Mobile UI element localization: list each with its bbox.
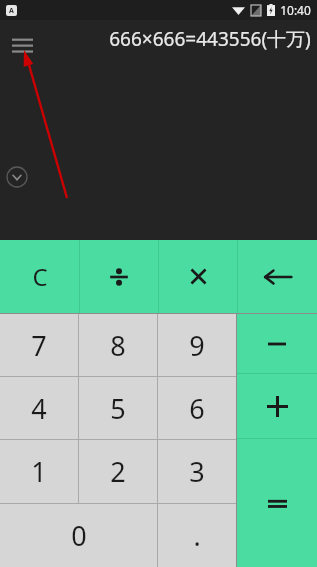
button[interactable]: 9 (158, 314, 236, 376)
button[interactable]: Backspace (238, 240, 317, 313)
button[interactable]: Menu (6, 29, 38, 61)
button[interactable]: 3 (158, 440, 236, 503)
button[interactable]: C (0, 240, 79, 313)
button[interactable]: Plus (237, 374, 317, 438)
button[interactable]: 2 (79, 440, 157, 503)
button[interactable]: Multiply (159, 240, 237, 313)
button[interactable]: Expand history (6, 166, 28, 188)
staticText: 1 (31, 453, 47, 490)
staticText: C (32, 260, 48, 293)
staticText: 666×666=443556(十万) (109, 26, 311, 52)
staticText: A (9, 6, 14, 16)
staticText: 2 (110, 453, 126, 490)
button[interactable]: 0 (0, 504, 157, 567)
button[interactable]: Divide (80, 240, 158, 313)
staticText: 3 (189, 453, 205, 490)
button[interactable]: Minus (237, 314, 317, 373)
staticText: 8 (110, 327, 126, 364)
button[interactable]: 6 (158, 377, 236, 439)
staticText: 10:40 (280, 2, 311, 18)
staticText: 5 (110, 390, 126, 427)
button[interactable]: 1 (0, 440, 78, 503)
staticText: . (193, 517, 201, 554)
button[interactable]: 4 (0, 377, 78, 439)
staticText: 4 (31, 390, 47, 427)
button[interactable]: . (158, 504, 236, 567)
staticText: 6 (189, 390, 205, 427)
staticText: 0 (71, 517, 87, 554)
staticText: 9 (189, 327, 205, 364)
button[interactable]: Equals (237, 439, 317, 567)
button[interactable]: 7 (0, 314, 78, 376)
button[interactable]: 8 (79, 314, 157, 376)
staticText: 7 (31, 327, 47, 364)
button[interactable]: 5 (79, 377, 157, 439)
